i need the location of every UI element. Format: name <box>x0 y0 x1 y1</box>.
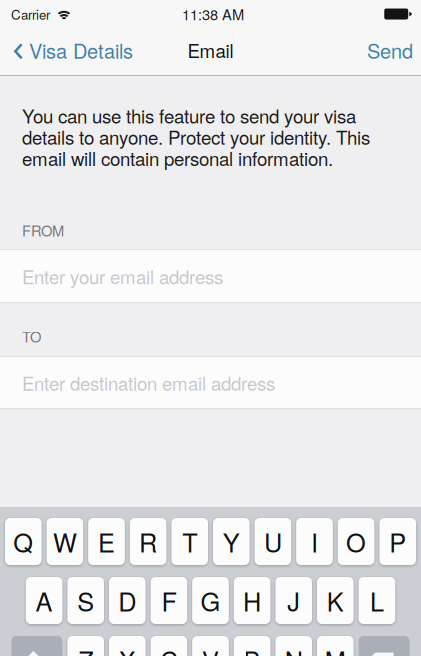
staticText: W <box>53 523 77 560</box>
staticText: TO <box>22 326 41 347</box>
staticText: R <box>139 523 157 560</box>
button[interactable]: D <box>109 577 146 624</box>
staticText: O <box>346 523 366 560</box>
staticText: F <box>161 582 176 619</box>
staticText: G <box>200 582 220 619</box>
staticText: FROM <box>22 220 64 241</box>
button[interactable]: R <box>130 518 166 565</box>
staticText: 11:38 AM <box>182 3 244 24</box>
button[interactable]: J <box>275 577 312 624</box>
button[interactable]: Visa Details <box>0 28 143 75</box>
button[interactable]: Shift <box>11 636 62 656</box>
staticText: M <box>325 641 346 656</box>
staticText: X <box>119 641 136 656</box>
button[interactable]: Q <box>5 518 42 565</box>
staticText: Y <box>223 523 240 560</box>
staticText: L <box>370 582 384 619</box>
button[interactable]: N <box>275 636 312 656</box>
button[interactable]: T <box>171 518 208 565</box>
staticText: B <box>244 641 261 656</box>
staticText: N <box>285 641 303 656</box>
staticText: K <box>327 582 344 619</box>
staticText: Visa Details <box>29 36 133 64</box>
button[interactable]: V <box>192 636 229 656</box>
button[interactable]: L <box>359 577 395 624</box>
staticText: C <box>160 641 178 656</box>
button[interactable]: M <box>317 636 354 656</box>
button[interactable]: G <box>192 577 229 624</box>
staticText: J <box>287 582 300 619</box>
staticText: A <box>36 582 53 619</box>
button[interactable]: A <box>26 577 62 624</box>
button[interactable]: B <box>234 636 270 656</box>
staticText: H <box>243 582 261 619</box>
staticText: P <box>389 523 406 560</box>
staticText: V <box>202 641 219 656</box>
button[interactable]: Y <box>213 518 250 565</box>
staticText: Z <box>78 641 93 656</box>
button[interactable]: E <box>88 518 125 565</box>
staticText: T <box>182 523 197 560</box>
staticText: Email <box>187 37 233 63</box>
button[interactable]: C <box>151 636 187 656</box>
button[interactable]: U <box>255 518 291 565</box>
button[interactable]: S <box>67 577 104 624</box>
button[interactable]: Send <box>353 28 421 75</box>
staticText: I <box>311 523 318 560</box>
staticText: Send <box>367 36 413 64</box>
button[interactable]: I <box>296 518 333 565</box>
staticText: S <box>77 582 94 619</box>
button[interactable]: Z <box>67 636 104 656</box>
staticText: You can use this feature to send your vi… <box>22 102 370 171</box>
button[interactable]: F <box>151 577 187 624</box>
staticText: Enter destination email address <box>22 369 275 396</box>
button[interactable]: Delete <box>359 636 410 656</box>
staticText: E <box>98 523 115 560</box>
button[interactable]: P <box>379 518 416 565</box>
button[interactable]: O <box>338 518 374 565</box>
staticText: Carrier <box>11 4 50 24</box>
button[interactable]: W <box>47 518 83 565</box>
staticText: Enter your email address <box>22 263 223 289</box>
button[interactable]: H <box>234 577 270 624</box>
staticText: Q <box>13 523 33 560</box>
staticText: D <box>118 582 136 619</box>
button[interactable]: K <box>317 577 354 624</box>
button[interactable]: X <box>109 636 146 656</box>
staticText: U <box>264 523 282 560</box>
